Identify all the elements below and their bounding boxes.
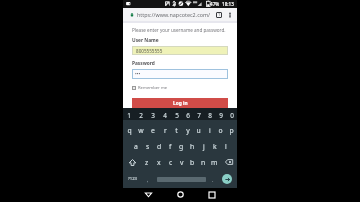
staticText: y bbox=[186, 126, 190, 135]
button[interactable]: 0 bbox=[226, 111, 237, 120]
staticText: k bbox=[213, 142, 217, 151]
button[interactable]: t bbox=[171, 122, 182, 138]
button[interactable]: a bbox=[130, 138, 142, 154]
staticText: n bbox=[201, 158, 206, 167]
button[interactable]: m bbox=[209, 154, 220, 170]
staticText: 4 bbox=[163, 111, 167, 120]
button[interactable]: i bbox=[204, 122, 215, 138]
staticText: i bbox=[209, 126, 211, 135]
staticText: a bbox=[134, 142, 138, 151]
button[interactable]: n bbox=[198, 154, 209, 170]
button[interactable]: 2 bbox=[135, 111, 147, 120]
button[interactable]: 4 bbox=[159, 111, 171, 120]
staticText: 9 bbox=[219, 111, 223, 120]
staticText: , bbox=[147, 176, 149, 183]
staticText: Remember me bbox=[138, 85, 168, 91]
staticText: j bbox=[203, 142, 205, 151]
staticText: c bbox=[169, 158, 173, 167]
button[interactable]: , bbox=[142, 170, 154, 188]
button[interactable]: Backspace bbox=[220, 154, 237, 170]
button[interactable]: 7 bbox=[193, 111, 204, 120]
button[interactable]: k bbox=[209, 138, 220, 154]
staticText: p bbox=[229, 126, 234, 135]
button[interactable]: h bbox=[187, 138, 198, 154]
staticText: 0 bbox=[230, 111, 234, 120]
staticText: s bbox=[146, 142, 150, 151]
staticText: 7 bbox=[197, 111, 201, 120]
button[interactable]: Tabs bbox=[215, 11, 223, 19]
button[interactable]: Remember me bbox=[132, 85, 168, 91]
button[interactable]: r bbox=[159, 122, 171, 138]
button[interactable]: 3 bbox=[147, 111, 159, 120]
staticText: u bbox=[196, 126, 201, 135]
staticText: h bbox=[190, 142, 195, 151]
button[interactable]: 6 bbox=[182, 111, 193, 120]
staticText: 47% bbox=[210, 1, 220, 7]
staticText: f bbox=[169, 142, 172, 151]
button[interactable]: d bbox=[154, 138, 165, 154]
button[interactable]: ?123 bbox=[123, 170, 142, 188]
staticText: q bbox=[127, 126, 132, 135]
button[interactable]: More options bbox=[226, 11, 234, 19]
staticText: User Name bbox=[132, 37, 159, 44]
button[interactable]: z bbox=[141, 154, 153, 170]
button[interactable]: 8 bbox=[204, 111, 215, 120]
button[interactable]: j bbox=[198, 138, 209, 154]
button[interactable]: s bbox=[142, 138, 154, 154]
staticText: m bbox=[211, 158, 218, 167]
staticText: 1 bbox=[127, 111, 131, 120]
button[interactable]: g bbox=[176, 138, 187, 154]
button[interactable]: 5 bbox=[171, 111, 182, 120]
staticText: 8 bbox=[208, 111, 212, 120]
staticText: x bbox=[157, 158, 161, 167]
staticText: v bbox=[180, 158, 184, 167]
staticText: 2 bbox=[139, 111, 143, 120]
button[interactable]: Shift bbox=[123, 154, 141, 170]
staticText: https://www.napcotec2.com/ bbox=[137, 11, 211, 18]
button[interactable]: ••• bbox=[132, 69, 228, 79]
button[interactable]: Back bbox=[141, 188, 155, 201]
staticText: r bbox=[164, 126, 167, 135]
staticText: Please enter your username and password. bbox=[132, 27, 226, 33]
staticText: w bbox=[138, 126, 144, 135]
button[interactable]: w bbox=[135, 122, 147, 138]
button[interactable]: p bbox=[226, 122, 237, 138]
staticText: z bbox=[145, 158, 149, 167]
button[interactable]: 1 bbox=[123, 111, 135, 120]
staticText: 3 bbox=[151, 111, 155, 120]
button[interactable]: l bbox=[220, 138, 231, 154]
button[interactable]: x bbox=[153, 154, 165, 170]
staticText: Log in bbox=[173, 100, 188, 107]
button[interactable]: Home bbox=[173, 188, 187, 201]
staticText: e bbox=[151, 126, 155, 135]
staticText: ?123 bbox=[128, 176, 138, 182]
button[interactable]: q bbox=[123, 122, 135, 138]
button[interactable]: b bbox=[187, 154, 198, 170]
staticText: . bbox=[212, 176, 214, 183]
staticText: 1 bbox=[218, 12, 221, 18]
button[interactable]: Log in bbox=[132, 98, 228, 108]
staticText: ••• bbox=[135, 71, 141, 77]
button[interactable]: Space bbox=[154, 170, 208, 188]
staticText: o bbox=[218, 126, 223, 135]
button[interactable]: Enter bbox=[217, 170, 237, 188]
staticText: l bbox=[225, 142, 227, 151]
button[interactable]: c bbox=[165, 154, 176, 170]
staticText: 5 bbox=[175, 111, 179, 120]
staticText: g bbox=[179, 142, 184, 151]
staticText: t bbox=[175, 126, 178, 135]
button[interactable]: Recent apps bbox=[205, 188, 219, 201]
button[interactable]: f bbox=[165, 138, 176, 154]
button[interactable]: o bbox=[215, 122, 226, 138]
staticText: 18:13 bbox=[222, 1, 234, 7]
button[interactable]: 9 bbox=[215, 111, 226, 120]
button[interactable]: v bbox=[176, 154, 187, 170]
button[interactable]: e bbox=[147, 122, 159, 138]
staticText: 6 bbox=[186, 111, 190, 120]
button[interactable]: u bbox=[193, 122, 204, 138]
staticText: b bbox=[190, 158, 195, 167]
button[interactable]: y bbox=[182, 122, 193, 138]
button[interactable]: . bbox=[208, 170, 217, 188]
staticText: Password bbox=[132, 60, 155, 67]
button[interactable]: 8005555555 bbox=[132, 46, 228, 55]
